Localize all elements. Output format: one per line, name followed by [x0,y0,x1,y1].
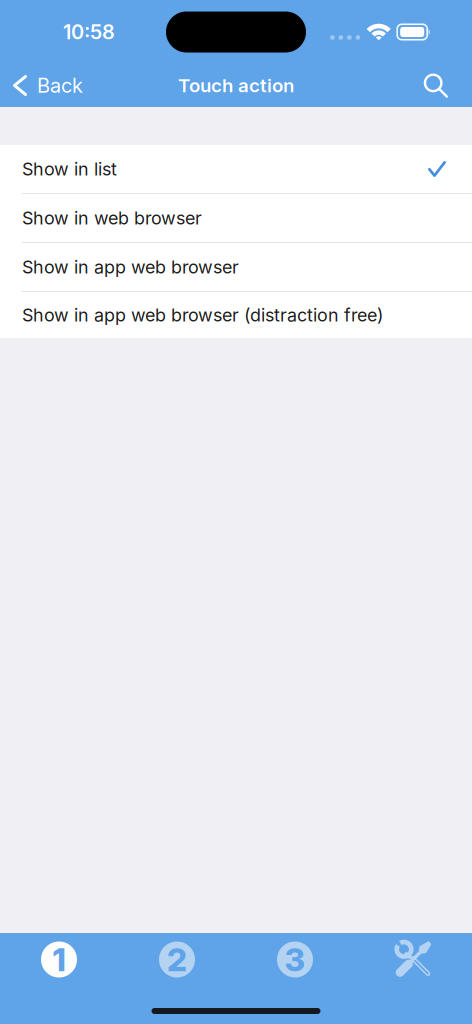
button[interactable]: Search [410,64,472,107]
staticText: Show in app web browser (distraction fre… [22,304,384,326]
staticText: 3 [284,940,305,979]
button[interactable]: Tab 3 [236,933,354,986]
staticText: 10:58 [63,20,115,44]
staticText: 2 [167,940,187,979]
staticText: Show in web browser [22,207,202,229]
staticText: 1 [52,940,65,979]
staticText: Show in app web browser [22,256,239,278]
button[interactable]: Show in app web browser (distraction fre… [0,292,472,338]
button[interactable]: Show in web browser [0,194,472,242]
staticText: Back [37,73,83,98]
button[interactable]: Tab 2 [118,933,236,986]
button[interactable]: Back [0,64,95,107]
staticText: Show in list [22,158,117,180]
button[interactable]: Tools [354,933,472,986]
staticText: Touch action [178,74,294,97]
button[interactable]: Tab 1 [0,933,118,986]
button[interactable]: Show in list [0,145,472,193]
button[interactable]: Show in app web browser [0,243,472,291]
